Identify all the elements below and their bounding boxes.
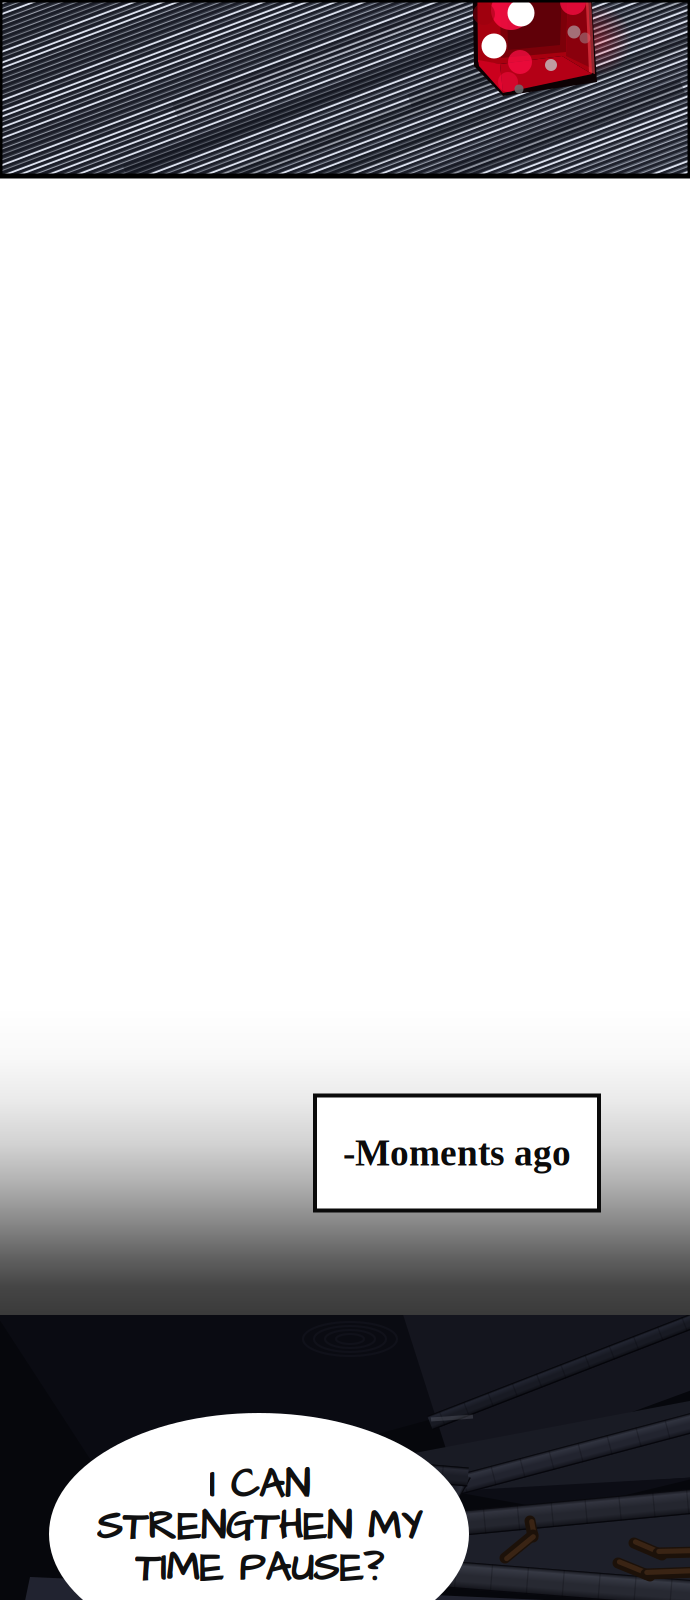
staticText: I CAN bbox=[208, 1458, 309, 1513]
staticText: -Moments ago bbox=[343, 1132, 571, 1174]
staticText: STRENGTHEN MY bbox=[96, 1499, 421, 1555]
staticText: TIME PAUSE? bbox=[135, 1541, 383, 1596]
